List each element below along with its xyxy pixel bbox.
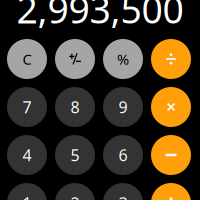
staticText: 6 (118, 144, 127, 166)
staticText: 4 (22, 144, 31, 166)
staticText: 2,993,500 (16, 0, 183, 34)
button[interactable]: Add (151, 183, 191, 200)
staticText: 2 (70, 192, 79, 200)
staticText: 9 (118, 96, 127, 118)
button[interactable]: 8 (55, 87, 95, 127)
staticText: 8 (70, 96, 79, 118)
staticText: 7 (22, 96, 31, 118)
button[interactable]: Multiply (151, 87, 191, 127)
button[interactable]: 2 (55, 183, 95, 200)
staticText: 1 (22, 192, 31, 200)
staticText: 5 (70, 144, 79, 166)
staticText: 3 (118, 192, 127, 200)
button[interactable]: 9 (103, 87, 143, 127)
button[interactable]: Divide (151, 39, 191, 79)
button[interactable]: 7 (7, 87, 47, 127)
button[interactable]: Plus minus (55, 39, 95, 79)
button[interactable]: 6 (103, 135, 143, 175)
button[interactable]: Subtract (151, 135, 191, 175)
staticText: % (117, 49, 129, 69)
button[interactable]: 4 (7, 135, 47, 175)
staticText: C (22, 49, 31, 69)
button[interactable]: 1 (7, 183, 47, 200)
button[interactable]: 5 (55, 135, 95, 175)
button[interactable]: % (103, 39, 143, 79)
button[interactable]: 3 (103, 183, 143, 200)
button[interactable]: C (7, 39, 47, 79)
